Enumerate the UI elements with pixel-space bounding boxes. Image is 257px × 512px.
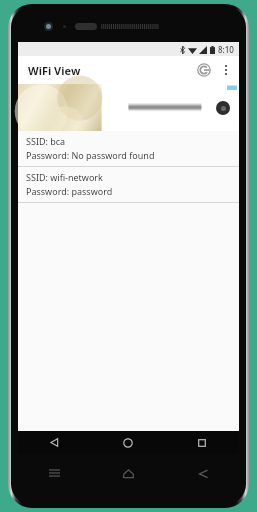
button[interactable]: Menu — [18, 460, 91, 486]
button[interactable]: Recent apps — [165, 431, 239, 454]
button[interactable]: Home — [91, 460, 165, 486]
button[interactable]: Home — [91, 431, 165, 454]
staticText: 8:10 — [218, 44, 234, 55]
staticText: Password: password — [26, 185, 113, 197]
button[interactable]: Back — [165, 460, 239, 486]
staticText: SSID: bca — [26, 135, 66, 147]
button[interactable] — [18, 84, 239, 131]
staticText: Password: No password found — [26, 149, 155, 161]
button[interactable]: More options — [216, 60, 236, 80]
staticText: SSID: wifi-network — [26, 171, 103, 183]
button[interactable]: Back — [18, 431, 91, 454]
button[interactable]: SSID: bca — [18, 131, 239, 166]
staticText: WiFi View — [28, 63, 81, 78]
button[interactable]: Scan for Wi-Fi networks — [192, 58, 216, 82]
button[interactable]: SSID: wifi-network — [18, 167, 239, 202]
